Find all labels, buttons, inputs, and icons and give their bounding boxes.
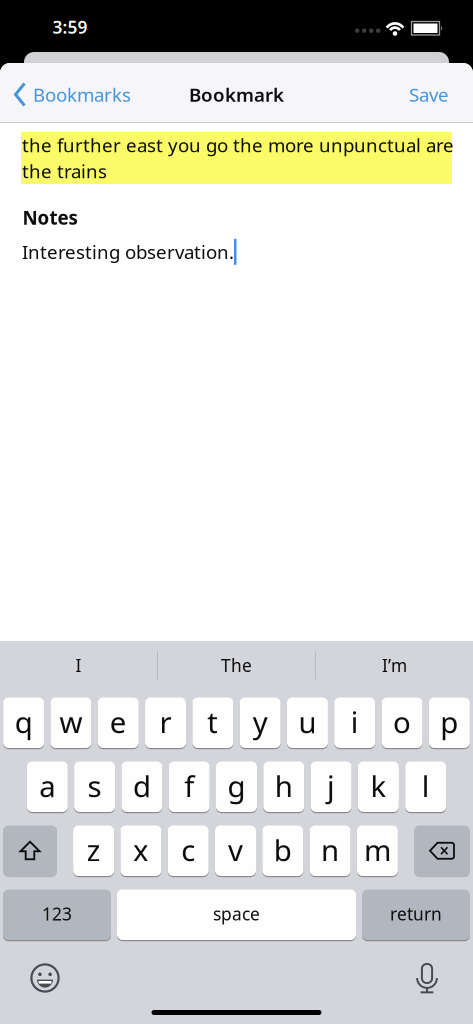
button[interactable]: j bbox=[311, 761, 352, 812]
staticText: I bbox=[75, 654, 81, 677]
staticText: 123 bbox=[42, 902, 72, 925]
button[interactable]: 123 bbox=[3, 889, 111, 940]
staticText: l bbox=[422, 766, 430, 805]
button[interactable]: space bbox=[117, 889, 356, 940]
staticText: The bbox=[221, 654, 252, 677]
staticText: r bbox=[159, 702, 171, 741]
staticText: return bbox=[390, 902, 442, 925]
button[interactable]: a bbox=[27, 761, 68, 812]
staticText: h bbox=[275, 766, 293, 805]
staticText: Interesting observation. bbox=[22, 239, 234, 264]
staticText: b bbox=[274, 830, 292, 869]
staticText: Notes bbox=[22, 205, 77, 230]
button[interactable]: v bbox=[215, 825, 256, 876]
button[interactable]: o bbox=[382, 697, 423, 748]
button[interactable] bbox=[414, 825, 470, 876]
staticText: the trains bbox=[22, 159, 107, 183]
button[interactable]: return bbox=[362, 889, 470, 940]
button[interactable]: r bbox=[145, 697, 186, 748]
staticText: x bbox=[133, 830, 149, 869]
staticText: I’m bbox=[382, 654, 407, 677]
button[interactable]: y bbox=[240, 697, 281, 748]
staticText: i bbox=[351, 702, 359, 741]
button[interactable] bbox=[3, 825, 57, 876]
staticText: y bbox=[253, 702, 268, 741]
staticText: n bbox=[321, 830, 339, 869]
button[interactable]: p bbox=[429, 697, 470, 748]
staticText: 3:59 bbox=[52, 15, 87, 38]
staticText: u bbox=[298, 702, 316, 741]
button[interactable]: l bbox=[405, 761, 446, 812]
staticText: a bbox=[39, 766, 55, 805]
staticText: Save bbox=[409, 82, 449, 107]
button[interactable]: Bookmarks bbox=[14, 82, 131, 107]
staticText: k bbox=[370, 766, 386, 805]
staticText: v bbox=[228, 830, 243, 869]
button[interactable]: c bbox=[168, 825, 209, 876]
button[interactable]: m bbox=[357, 825, 398, 876]
staticText: j bbox=[327, 766, 335, 805]
button[interactable]: k bbox=[358, 761, 399, 812]
button[interactable]: z bbox=[73, 825, 114, 876]
staticText: d bbox=[133, 766, 151, 805]
staticText: z bbox=[87, 830, 101, 869]
staticText: space bbox=[213, 902, 260, 925]
button[interactable]: q bbox=[3, 697, 44, 748]
button[interactable]: f bbox=[169, 761, 210, 812]
button[interactable]: Save bbox=[409, 82, 449, 107]
button[interactable]: h bbox=[263, 761, 304, 812]
button[interactable]: I’m bbox=[316, 637, 473, 693]
button[interactable]: e bbox=[98, 697, 139, 748]
staticText: m bbox=[364, 830, 391, 869]
staticText: c bbox=[181, 830, 195, 869]
button[interactable] bbox=[30, 963, 60, 993]
button[interactable]: w bbox=[50, 697, 91, 748]
button[interactable]: t bbox=[192, 697, 233, 748]
staticText: e bbox=[110, 702, 127, 741]
staticText: the further east you go the more unpunct… bbox=[22, 133, 454, 157]
button[interactable] bbox=[416, 962, 438, 994]
button[interactable]: x bbox=[120, 825, 161, 876]
staticText: g bbox=[227, 766, 245, 805]
staticText: p bbox=[440, 702, 458, 741]
button[interactable]: d bbox=[121, 761, 162, 812]
button[interactable]: u bbox=[287, 697, 328, 748]
button[interactable]: b bbox=[262, 825, 303, 876]
staticText: o bbox=[393, 702, 411, 741]
button[interactable]: g bbox=[216, 761, 257, 812]
staticText: f bbox=[184, 766, 194, 805]
staticText: t bbox=[207, 702, 218, 741]
staticText: s bbox=[88, 766, 102, 805]
button[interactable]: The bbox=[158, 637, 315, 693]
staticText: w bbox=[59, 702, 82, 741]
staticText: Bookmarks bbox=[33, 82, 131, 107]
button[interactable]: n bbox=[310, 825, 351, 876]
staticText: Bookmark bbox=[189, 82, 284, 107]
button[interactable]: s bbox=[74, 761, 115, 812]
staticText: q bbox=[15, 702, 33, 741]
button[interactable]: i bbox=[334, 697, 375, 748]
button[interactable]: I bbox=[0, 637, 157, 693]
